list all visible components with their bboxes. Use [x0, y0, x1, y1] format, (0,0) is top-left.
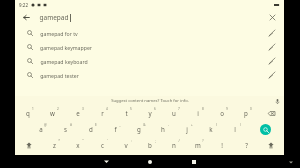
button[interactable]: Hide keyboard	[286, 157, 296, 167]
button[interactable]: Backspace	[258, 105, 284, 121]
staticText: 7	[178, 107, 180, 111]
staticText: ?	[202, 139, 204, 143]
staticText: f	[114, 125, 117, 133]
staticText: 8	[202, 107, 204, 111]
staticText: m	[195, 141, 201, 149]
button[interactable]: 0	[234, 105, 258, 121]
button[interactable]: Home	[142, 155, 158, 168]
staticText: (	[216, 123, 217, 127]
button[interactable]: +	[175, 121, 199, 137]
staticText: s	[64, 125, 67, 133]
button[interactable]: Clear	[266, 11, 279, 24]
staticText: gamepad	[39, 13, 69, 22]
button[interactable]: 3	[65, 105, 90, 121]
button[interactable]: 7	[162, 105, 186, 121]
button[interactable]: Insert suggestion	[266, 41, 278, 53]
button[interactable]: )	[223, 121, 247, 137]
staticText: &	[143, 123, 146, 127]
staticText: 5	[130, 107, 132, 111]
button[interactable]: 6	[138, 105, 162, 121]
button[interactable]: Insert suggestion	[266, 69, 278, 81]
staticText: _	[119, 123, 121, 127]
button[interactable]: &	[127, 121, 151, 137]
staticText: z	[53, 141, 56, 149]
staticText: 4	[106, 107, 108, 111]
staticText: #	[70, 123, 72, 127]
button[interactable]: Insert suggestion	[266, 27, 278, 39]
staticText: e	[76, 109, 80, 117]
button[interactable]: Space	[64, 157, 236, 163]
staticText: i	[197, 109, 199, 117]
staticText: gamepad keyboard	[40, 58, 88, 65]
staticText: ;	[155, 139, 156, 143]
button[interactable]: Insert suggestion	[266, 55, 278, 67]
button[interactable]: Shift	[15, 137, 42, 153]
button[interactable]: -	[151, 121, 175, 137]
button[interactable]: gamepad for tv	[15, 26, 284, 40]
button[interactable]: !	[210, 137, 234, 153]
button[interactable]: ?	[234, 137, 258, 153]
button[interactable]: gamepad keymapper	[15, 40, 284, 54]
staticText: j	[186, 125, 188, 133]
button[interactable]: 4	[90, 105, 114, 121]
button[interactable]: gamepad tester	[15, 68, 284, 82]
staticText: ?	[245, 141, 248, 149]
button[interactable]: (	[199, 121, 223, 137]
staticText: 2	[57, 107, 59, 111]
button[interactable]: ?	[186, 137, 210, 153]
button[interactable]: $	[78, 121, 103, 137]
staticText: gamepad keymapper	[40, 44, 92, 51]
button[interactable]: :	[114, 137, 138, 153]
button[interactable]: Recents	[186, 155, 202, 168]
staticText: :	[131, 139, 132, 143]
button[interactable]: ?123	[15, 153, 48, 167]
staticText: y	[148, 109, 152, 117]
button[interactable]: /	[162, 137, 186, 153]
staticText: x	[76, 141, 80, 149]
button[interactable]: ,	[48, 153, 64, 167]
staticText: q	[26, 109, 30, 117]
button[interactable]: Back	[20, 11, 33, 24]
staticText: 9:22	[19, 2, 28, 8]
button[interactable]: _	[103, 121, 127, 137]
staticText: 0	[250, 107, 252, 111]
staticText: /	[178, 139, 180, 143]
button[interactable]: @	[28, 121, 53, 137]
staticText: !	[221, 141, 223, 149]
staticText: k	[209, 125, 213, 133]
button[interactable]: #	[53, 121, 78, 137]
staticText: p	[244, 109, 248, 117]
staticText: w	[50, 109, 55, 117]
staticText: gamepad tester	[40, 72, 79, 79]
button[interactable]: *	[42, 137, 66, 153]
staticText: 6	[154, 107, 156, 111]
staticText: $	[95, 123, 97, 127]
staticText: '	[107, 139, 108, 143]
staticText: u	[172, 109, 176, 117]
staticText: @	[44, 123, 47, 127]
button[interactable]: 1	[15, 105, 40, 121]
staticText: gamepad for tv	[40, 30, 78, 37]
button[interactable]: '	[90, 137, 114, 153]
button[interactable]: Back	[98, 155, 114, 168]
staticText: )	[240, 123, 241, 127]
button[interactable]: "	[66, 137, 90, 153]
button[interactable]: Search	[260, 124, 271, 135]
button[interactable]: 2	[40, 105, 65, 121]
button[interactable]: 8	[186, 105, 210, 121]
button[interactable]: ;	[138, 137, 162, 153]
button[interactable]: Shift	[258, 137, 284, 153]
button[interactable]: 9	[210, 105, 234, 121]
staticText: c	[101, 141, 104, 149]
staticText: "	[82, 139, 84, 143]
staticText: 1	[32, 107, 34, 111]
button[interactable]: 5	[114, 105, 138, 121]
button[interactable]: .	[236, 153, 252, 167]
button[interactable]: gamepad keyboard	[15, 54, 284, 68]
staticText: a	[39, 125, 43, 133]
button[interactable]: Voice input	[273, 97, 281, 105]
button[interactable]: Emoji	[252, 153, 284, 167]
